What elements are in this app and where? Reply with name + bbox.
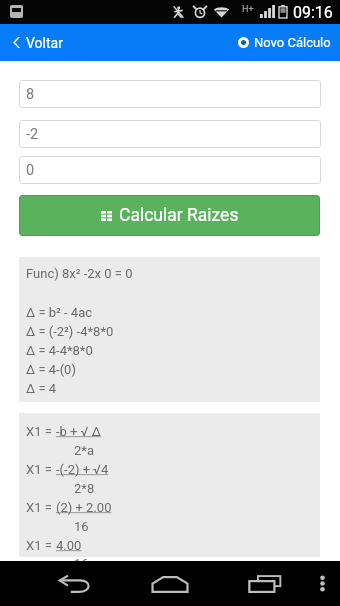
button[interactable]: Voltar: [0, 24, 73, 61]
staticText: Δ = b² - 4ac: [26, 305, 93, 320]
staticText: -2: [26, 126, 39, 143]
staticText: Voltar: [26, 35, 63, 51]
staticText: 8: [26, 86, 35, 103]
staticText: 2*a: [74, 443, 94, 458]
button[interactable]: Novo Cálculo: [228, 24, 340, 61]
button[interactable]: More options: [310, 561, 334, 606]
staticText: -b + √ Δ: [56, 424, 101, 439]
staticText: Δ = 4-4*8*0: [26, 343, 93, 358]
staticText: 4.00: [56, 538, 82, 553]
staticText: Calcular Raizes: [119, 205, 239, 226]
staticText: X1 =: [26, 462, 56, 477]
staticText: 2*8: [74, 481, 95, 496]
button[interactable]: Back: [53, 561, 97, 606]
staticText: X1 =: [26, 538, 56, 553]
staticText: Novo Cálculo: [254, 35, 331, 50]
button[interactable]: -2: [19, 120, 321, 148]
staticText: (2) + 2.00: [56, 500, 112, 515]
staticText: Δ = 4: [26, 381, 57, 396]
button[interactable]: Home: [148, 561, 192, 606]
staticText: -(-2) + √4: [56, 462, 109, 477]
staticText: 0: [26, 162, 35, 179]
staticText: H+: [242, 4, 254, 15]
staticText: Func) 8x² -2x 0 = 0: [26, 266, 133, 281]
staticText: X1 =: [26, 424, 56, 439]
staticText: Δ = (-2²) -4*8*0: [26, 324, 114, 339]
staticText: 09:16: [293, 3, 333, 22]
staticText: Δ = 4-(0): [26, 362, 76, 377]
staticText: 16: [74, 556, 89, 571]
button[interactable]: 8: [19, 80, 321, 108]
staticText: X1 =: [26, 500, 56, 515]
button[interactable]: Recent apps: [242, 561, 286, 606]
button[interactable]: Calcular Raizes: [19, 195, 320, 236]
staticText: 16: [74, 519, 89, 534]
button[interactable]: 0: [19, 156, 321, 184]
